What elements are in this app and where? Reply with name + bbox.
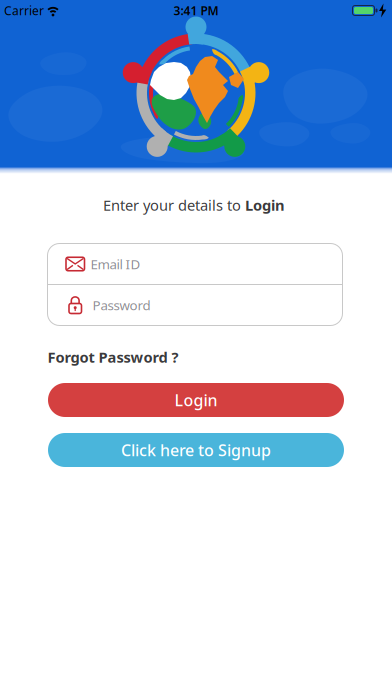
staticText: 3:41 PM bbox=[173, 2, 218, 18]
button[interactable]: Password bbox=[49, 285, 343, 325]
staticText: Forgot Password ? bbox=[47, 347, 178, 367]
button[interactable]: Login bbox=[48, 383, 344, 417]
staticText: Login bbox=[174, 389, 217, 411]
staticText: Click here to Signup bbox=[121, 439, 271, 461]
staticText: Password bbox=[92, 296, 150, 314]
staticText: Carrier bbox=[4, 2, 44, 18]
staticText: Enter your details to Login bbox=[103, 195, 285, 215]
button[interactable]: Forgot Password ? bbox=[47, 347, 178, 367]
button[interactable]: Click here to Signup bbox=[48, 433, 344, 467]
staticText: Email ID bbox=[90, 255, 140, 273]
button[interactable]: Email ID bbox=[49, 244, 343, 284]
